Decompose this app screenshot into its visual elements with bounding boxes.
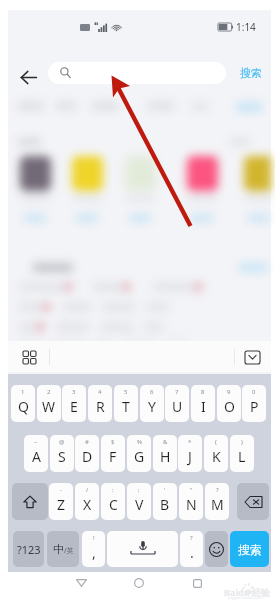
button[interactable]: 8 [191, 385, 215, 422]
button[interactable]: 2 [37, 385, 61, 422]
button[interactable]: 3 [62, 385, 86, 422]
button[interactable] [18, 282, 74, 292]
staticText: M [211, 495, 224, 514]
staticText: Baidu 经验 [224, 586, 270, 598]
staticText: 3 [72, 388, 76, 396]
button[interactable]: Home [128, 572, 150, 594]
staticText: A [32, 447, 41, 466]
staticText: I [201, 397, 206, 416]
staticText: V [135, 495, 144, 514]
staticText: $ [111, 438, 115, 446]
staticText: 中 [53, 542, 64, 556]
staticText: S [58, 447, 66, 466]
button[interactable]: 搜索 [230, 60, 271, 86]
button[interactable] [52, 338, 84, 348]
button[interactable]: - [49, 483, 73, 520]
button[interactable]: ! [82, 531, 105, 567]
staticText: J [188, 447, 192, 466]
button[interactable] [125, 156, 156, 191]
button[interactable]: 4 [88, 385, 112, 422]
button[interactable]: Back [13, 62, 43, 92]
staticText: O [224, 397, 235, 416]
staticText: , [92, 543, 96, 562]
button[interactable]: ? [180, 531, 203, 567]
button[interactable]: 6 [140, 385, 164, 422]
button[interactable]: Back [70, 572, 92, 594]
button[interactable] [18, 338, 42, 348]
staticText: 0 [252, 388, 256, 396]
button[interactable]: Messages [239, 344, 265, 370]
button[interactable]: ( [204, 435, 228, 472]
button[interactable]: 搜索 [230, 531, 269, 567]
button[interactable]: ' [153, 483, 177, 520]
staticText: Q [18, 397, 29, 416]
button[interactable]: " [179, 483, 203, 520]
button[interactable] [122, 338, 156, 348]
staticText: jingyan.baidu.com [228, 595, 263, 600]
button[interactable]: & [153, 435, 177, 472]
button[interactable]: Shift [12, 483, 48, 520]
button[interactable]: Apps [16, 344, 42, 370]
button[interactable] [238, 263, 268, 272]
staticText: . [190, 543, 194, 562]
staticText: ; [138, 486, 140, 494]
button[interactable]: ~ [24, 435, 48, 472]
staticText: ) [241, 438, 243, 446]
staticText: # [85, 438, 89, 446]
button[interactable]: 5 [114, 385, 138, 422]
staticText: ' [164, 486, 166, 494]
button[interactable]: Emoji [205, 531, 228, 567]
staticText: 2 [47, 388, 51, 396]
button[interactable]: Recents [186, 572, 208, 594]
staticText: 6 [150, 388, 154, 396]
staticText: ? [190, 534, 193, 542]
button[interactable]: 7 [165, 385, 189, 422]
button[interactable]: @ [50, 435, 74, 472]
button[interactable] [72, 156, 103, 191]
staticText: P [250, 397, 259, 416]
button[interactable] [18, 302, 52, 312]
button[interactable] [244, 156, 275, 191]
button[interactable]: 0 [242, 385, 266, 422]
button[interactable]: 9 [217, 385, 241, 422]
button[interactable]: $ [101, 435, 125, 472]
staticText: 7 [175, 388, 179, 396]
staticText: T [122, 397, 130, 416]
button[interactable]: ; [127, 483, 151, 520]
staticText: U [172, 397, 183, 416]
button[interactable]: ) [230, 435, 254, 472]
button[interactable]: * [178, 435, 202, 472]
staticText: 4 [98, 388, 102, 396]
button[interactable]: ? [205, 483, 229, 520]
staticText: /英 [64, 546, 74, 556]
button[interactable]: % [127, 435, 151, 472]
button[interactable]: ?123 [13, 531, 44, 567]
button[interactable] [152, 282, 204, 292]
button[interactable]: Space [107, 531, 178, 567]
staticText: E [70, 397, 78, 416]
button[interactable]: Backspace [237, 483, 269, 520]
button[interactable]: : [101, 483, 125, 520]
button[interactable] [166, 338, 186, 348]
button[interactable] [20, 156, 51, 191]
button[interactable] [48, 62, 226, 84]
button[interactable]: 中 [47, 531, 79, 567]
button[interactable] [18, 322, 46, 332]
staticText: B [160, 495, 170, 514]
staticText: ?123 [17, 542, 41, 557]
button[interactable]: 1 [11, 385, 35, 422]
staticText: ~ [34, 438, 38, 446]
button[interactable] [94, 338, 112, 348]
button[interactable] [187, 156, 218, 191]
button[interactable]: / [75, 483, 99, 520]
staticText: - [60, 486, 62, 494]
button[interactable] [92, 282, 132, 292]
staticText: " [190, 486, 193, 494]
button[interactable]: # [75, 435, 99, 472]
